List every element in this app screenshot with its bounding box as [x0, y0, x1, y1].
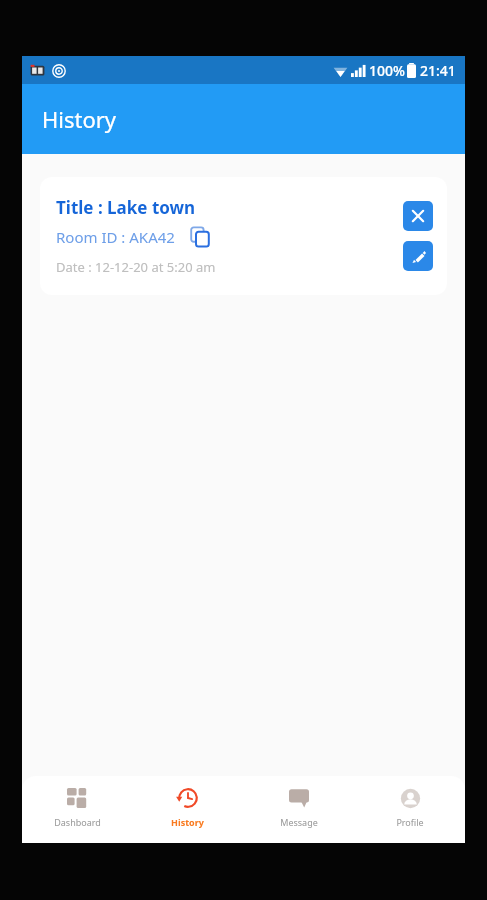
button[interactable]: Title : Lake town	[40, 177, 447, 295]
staticText: History	[171, 816, 204, 828]
staticText: 21:41	[420, 61, 456, 80]
staticText: Message	[280, 816, 318, 828]
staticText: Dashboard	[54, 816, 101, 828]
button[interactable]: Profile	[354, 776, 465, 843]
button[interactable]: Dashboard	[22, 776, 132, 843]
staticText: History	[42, 104, 117, 134]
button[interactable]: Delete	[403, 201, 433, 231]
staticText: Profile	[396, 816, 424, 828]
button[interactable]: Copy room ID	[187, 224, 213, 250]
button[interactable]: Edit	[403, 241, 433, 271]
staticText: 100%	[369, 61, 405, 80]
staticText: Date : 12-12-20 at 5:20 am	[56, 258, 216, 276]
staticText: Room ID : AKA42	[56, 227, 175, 247]
button[interactable]: Message	[243, 776, 354, 843]
button[interactable]: History	[132, 776, 243, 843]
staticText: Title : Lake town	[56, 196, 196, 219]
